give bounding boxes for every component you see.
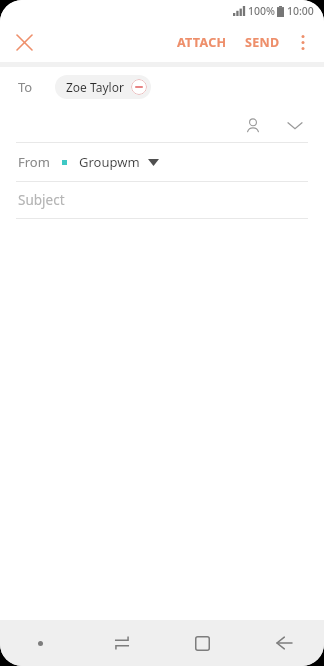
- staticText: ATTACH: [177, 34, 227, 51]
- button[interactable]: Recent apps: [81, 620, 162, 666]
- staticText: 10:00: [287, 4, 314, 18]
- button[interactable]: Keyboard hide: [0, 620, 81, 666]
- button[interactable]: Remove recipient: [131, 79, 147, 95]
- staticText: To: [18, 78, 33, 96]
- button[interactable]: Subject: [0, 182, 324, 218]
- staticText: Subject: [18, 191, 65, 209]
- button[interactable]: Add contact: [236, 108, 270, 142]
- button[interactable]: Expand recipients: [278, 108, 312, 142]
- staticText: 100%: [248, 4, 275, 18]
- staticText: From: [18, 153, 50, 171]
- button[interactable]: ATTACH: [171, 26, 233, 59]
- staticText: Zoe Taylor: [66, 79, 124, 95]
- button[interactable]: Home: [162, 620, 243, 666]
- button[interactable]: Close: [6, 24, 42, 60]
- button[interactable]: More options: [286, 25, 320, 59]
- button[interactable]: Back: [243, 620, 324, 666]
- button[interactable]: Zoe Taylor: [55, 75, 151, 99]
- staticText: Groupwm: [79, 153, 140, 171]
- button[interactable]: From: [0, 143, 324, 181]
- staticText: SEND: [245, 34, 280, 51]
- button[interactable]: SEND: [239, 26, 286, 59]
